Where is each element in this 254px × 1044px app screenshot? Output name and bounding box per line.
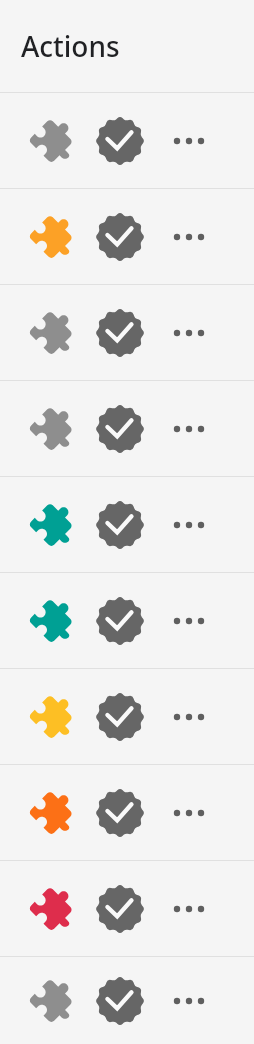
button[interactable]: More options bbox=[165, 693, 213, 741]
button[interactable]: More options bbox=[0, 573, 254, 668]
button[interactable]: More options bbox=[0, 93, 254, 188]
button[interactable]: More options bbox=[165, 213, 213, 261]
button[interactable]: More options bbox=[165, 885, 213, 933]
button[interactable]: More options bbox=[165, 309, 213, 357]
button[interactable]: More options bbox=[0, 957, 254, 1044]
button[interactable]: More options bbox=[165, 977, 213, 1025]
button[interactable]: More options bbox=[165, 501, 213, 549]
button[interactable]: More options bbox=[165, 405, 213, 453]
button[interactable]: More options bbox=[0, 381, 254, 476]
button[interactable]: More options bbox=[0, 285, 254, 380]
staticText: Actions bbox=[21, 27, 120, 65]
button[interactable]: More options bbox=[0, 861, 254, 956]
button[interactable]: More options bbox=[165, 117, 213, 165]
button[interactable]: More options bbox=[165, 597, 213, 645]
button[interactable]: More options bbox=[0, 477, 254, 572]
button[interactable]: More options bbox=[165, 789, 213, 837]
button[interactable]: More options bbox=[0, 765, 254, 860]
button[interactable]: More options bbox=[0, 189, 254, 284]
button[interactable]: More options bbox=[0, 669, 254, 764]
